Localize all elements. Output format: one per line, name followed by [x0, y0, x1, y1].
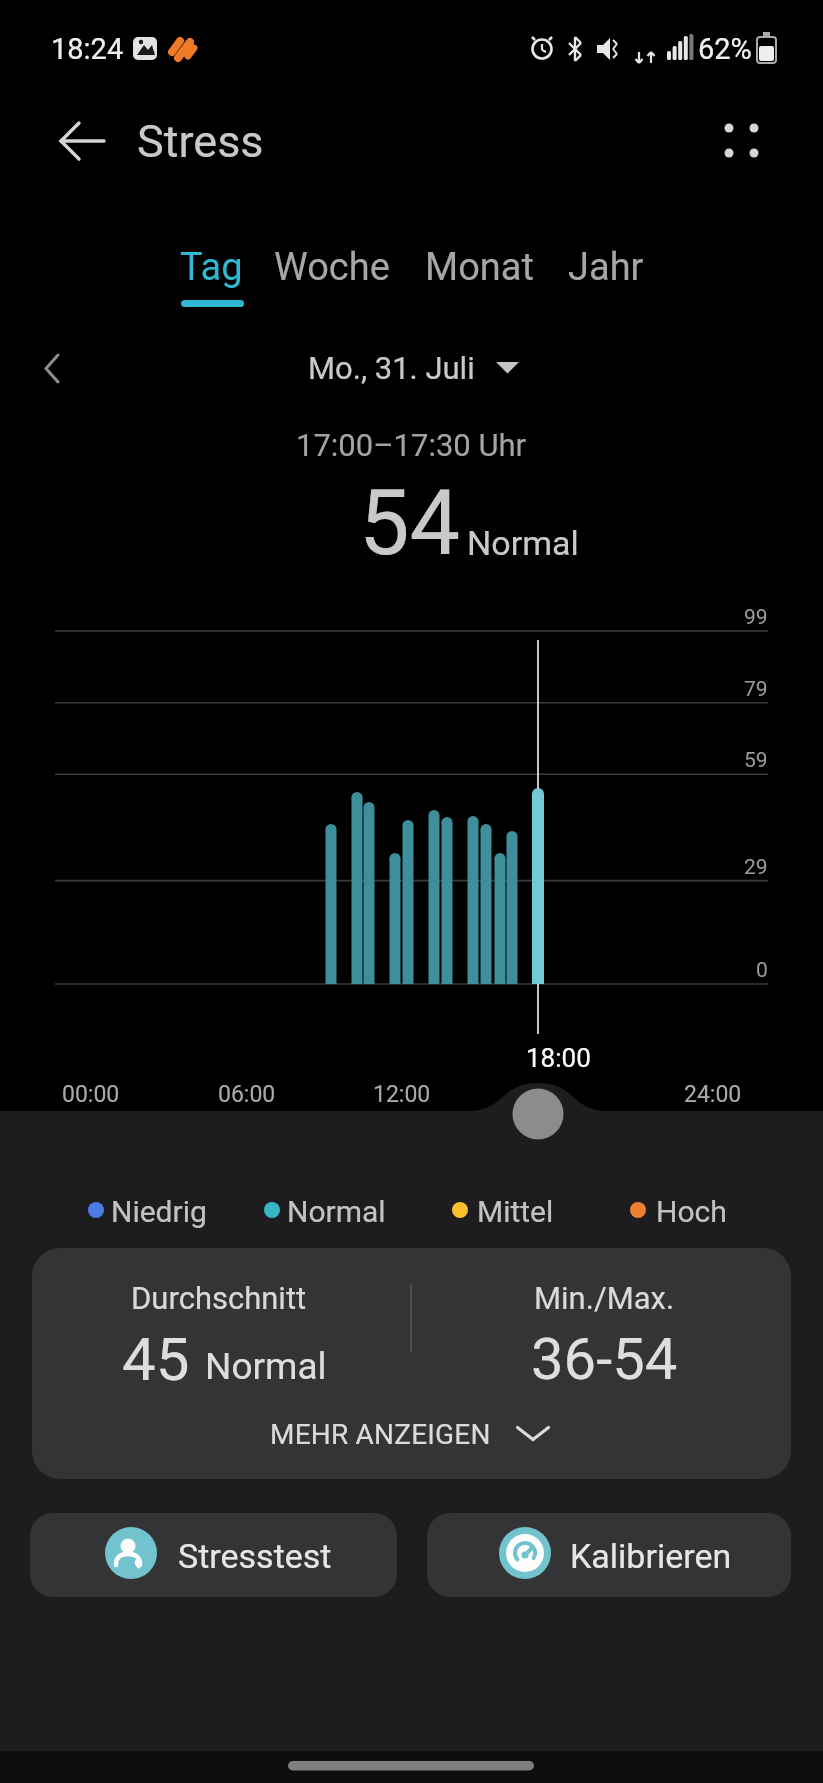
staticText: 12:00 [373, 1081, 431, 1108]
staticText: 24:00 [684, 1081, 742, 1108]
staticText: Mittel [477, 1194, 554, 1229]
staticText: 79 [744, 677, 768, 702]
staticText: MEHR ANZEIGEN [270, 1418, 491, 1451]
staticText: Woche [274, 245, 390, 290]
staticText: Niedrig [111, 1194, 207, 1229]
staticText: Stress [137, 115, 264, 168]
button[interactable] [272, 238, 392, 310]
staticText: 18:24 [51, 32, 124, 66]
staticText: 0 [756, 958, 768, 983]
staticText: Monat [425, 245, 534, 290]
button[interactable]: Kalibrieren [427, 1513, 791, 1597]
button[interactable]: Stresstest [30, 1513, 397, 1597]
staticText: Kalibrieren [570, 1536, 732, 1576]
staticText: Min./Max. [534, 1280, 675, 1316]
button[interactable] [170, 238, 256, 310]
staticText: 59 [744, 748, 768, 773]
staticText: Mo., 31. Juli [308, 350, 475, 386]
staticText: 54 [359, 471, 461, 576]
staticText: 62% [698, 32, 752, 66]
staticText: Durchschnitt [131, 1280, 307, 1316]
staticText: Normal [205, 1345, 327, 1388]
staticText: 00:00 [62, 1081, 120, 1108]
button[interactable] [421, 238, 537, 310]
staticText: 29 [744, 855, 768, 880]
staticText: 36-54 [531, 1325, 678, 1393]
staticText: Hoch [656, 1194, 727, 1229]
button[interactable] [48, 108, 116, 174]
staticText: 18:00 [526, 1043, 591, 1073]
button[interactable] [32, 1398, 791, 1479]
staticText: 99 [744, 605, 768, 630]
staticText: Jahr [568, 245, 644, 290]
button[interactable] [290, 340, 535, 392]
button[interactable] [562, 238, 650, 310]
staticText: Normal [467, 523, 579, 563]
button[interactable] [708, 106, 774, 172]
staticText: 06:00 [218, 1081, 276, 1108]
button[interactable] [30, 344, 74, 392]
staticText: Normal [287, 1194, 386, 1229]
staticText: Stresstest [178, 1536, 332, 1576]
staticText: 45 [122, 1324, 190, 1394]
staticText: Tag [180, 245, 243, 290]
staticText: 17:00–17:30 Uhr [296, 427, 527, 463]
